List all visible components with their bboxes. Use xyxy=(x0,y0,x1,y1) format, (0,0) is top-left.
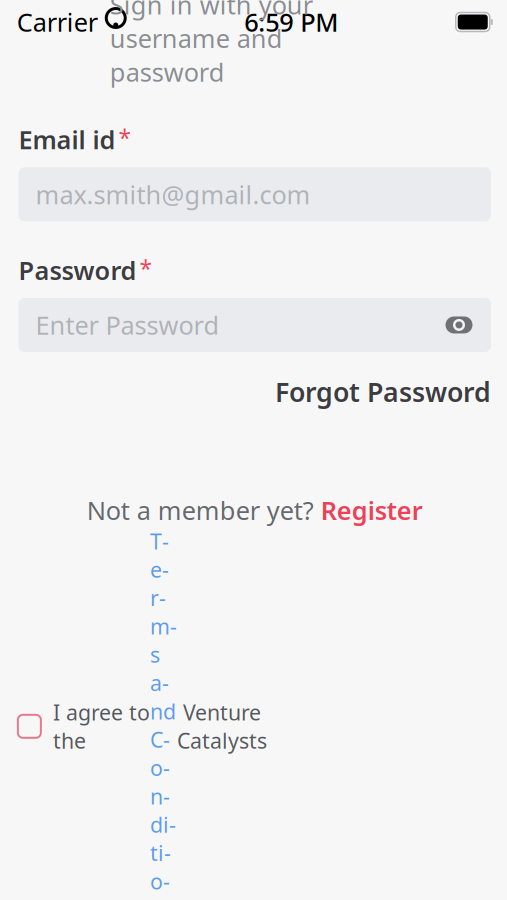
staticText: * xyxy=(139,253,151,283)
staticText: Password xyxy=(18,253,136,287)
staticText: 6:59 PM xyxy=(244,5,338,39)
button[interactable]: Forgot Password xyxy=(275,374,491,409)
staticText: Forgot Password xyxy=(275,374,491,409)
button[interactable]: Show password xyxy=(444,315,474,335)
button[interactable]: Terms and Conditions xyxy=(150,527,177,900)
button[interactable]: Not a member yet? xyxy=(87,493,423,527)
staticText: max.smith@gmail.com xyxy=(35,177,310,211)
staticText: Email id xyxy=(18,123,115,156)
staticText: Sign in with your username and password xyxy=(110,0,313,89)
staticText: Terms and Conditions xyxy=(150,527,177,900)
staticText: Enter Password xyxy=(35,308,219,342)
staticText: Venture Catalysts xyxy=(177,698,267,755)
staticText: I agree to the xyxy=(53,698,150,755)
staticText: * xyxy=(118,123,130,153)
staticText: Not a member yet? xyxy=(87,493,321,527)
staticText: Register xyxy=(321,493,423,527)
staticText: Carrier xyxy=(17,5,98,39)
button[interactable]: Agree to Terms and Conditions xyxy=(18,715,41,738)
